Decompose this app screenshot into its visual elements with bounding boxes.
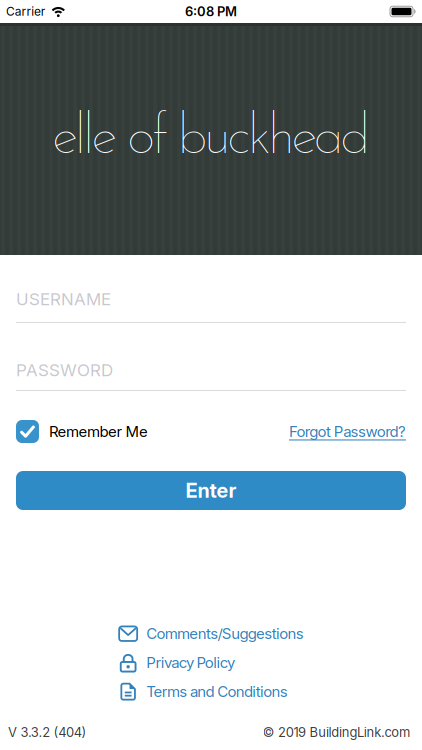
staticText: elle of buckhead bbox=[52, 111, 370, 167]
staticText: Forgot Password? bbox=[289, 423, 406, 440]
button[interactable]: PASSWORD bbox=[0, 323, 422, 391]
button[interactable]: USERNAME bbox=[0, 255, 422, 323]
button[interactable]: Terms and Conditions bbox=[118, 682, 288, 702]
button[interactable]: Enter bbox=[16, 471, 406, 510]
staticText: Enter bbox=[185, 479, 236, 502]
staticText: Carrier bbox=[6, 4, 46, 19]
staticText: © 2019 BuildingLink.com bbox=[263, 725, 410, 740]
button[interactable]: Privacy Policy bbox=[118, 653, 235, 673]
staticText: USERNAME bbox=[16, 289, 111, 309]
button[interactable]: Forgot Password? bbox=[289, 423, 406, 440]
staticText: 6:08 PM bbox=[185, 4, 237, 19]
button[interactable]: Remember Me bbox=[16, 420, 148, 443]
button[interactable]: Comments/Suggestions bbox=[118, 624, 304, 644]
staticText: Privacy Policy bbox=[146, 654, 235, 671]
staticText: V 3.3.2 (404) bbox=[8, 725, 86, 740]
staticText: Comments/Suggestions bbox=[146, 625, 304, 642]
staticText: Terms and Conditions bbox=[146, 683, 288, 700]
staticText: PASSWORD bbox=[16, 360, 113, 380]
staticText: Remember Me bbox=[49, 423, 148, 440]
